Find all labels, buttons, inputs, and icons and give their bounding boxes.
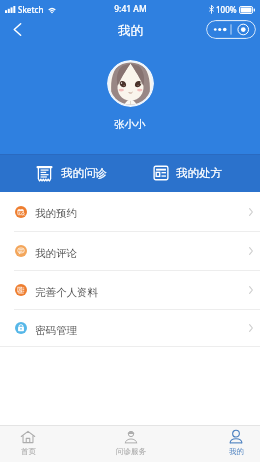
staticText: 我的 bbox=[229, 447, 244, 456]
button[interactable]: 我的问诊 bbox=[36, 154, 107, 192]
staticText: 完善个人资料 bbox=[35, 286, 98, 299]
staticText: 100% bbox=[216, 4, 237, 15]
button[interactable]: 问诊服务 bbox=[105, 426, 157, 462]
staticText: 我的处方 bbox=[176, 166, 222, 180]
staticText: 问诊服务 bbox=[116, 447, 146, 456]
button[interactable]: 密码管理 bbox=[0, 310, 260, 346]
button[interactable]: 首页 bbox=[2, 426, 54, 462]
button[interactable]: 我的 bbox=[210, 426, 260, 462]
button[interactable]: Profile picture bbox=[107, 60, 154, 107]
staticText: 我的预约 bbox=[35, 207, 77, 220]
staticText: 我的评论 bbox=[35, 247, 77, 260]
button[interactable]: 我的预约 bbox=[0, 192, 260, 231]
button[interactable]: More options bbox=[206, 20, 256, 39]
button[interactable]: 我的处方 bbox=[153, 154, 222, 192]
button[interactable]: 我的评论 bbox=[0, 232, 260, 270]
staticText: 我的 bbox=[118, 23, 143, 39]
button[interactable]: 完善个人资料 bbox=[0, 271, 260, 309]
staticText: 密码管理 bbox=[35, 324, 77, 337]
staticText: 我的问诊 bbox=[61, 166, 107, 180]
staticText: 首页 bbox=[21, 447, 36, 456]
staticText: 9:41 AM bbox=[114, 3, 147, 15]
staticText: Sketch bbox=[18, 4, 44, 15]
staticText: 张小小 bbox=[114, 118, 146, 131]
button[interactable]: Back bbox=[6, 18, 29, 41]
